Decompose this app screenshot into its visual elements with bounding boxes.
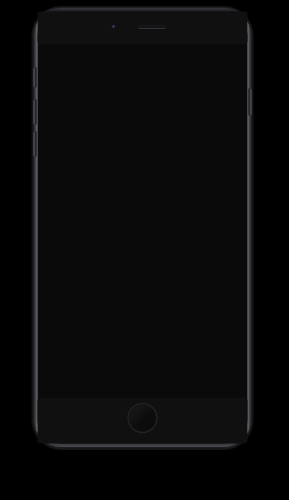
button[interactable]: Smartphone device mockup, screen off <box>0 0 289 500</box>
